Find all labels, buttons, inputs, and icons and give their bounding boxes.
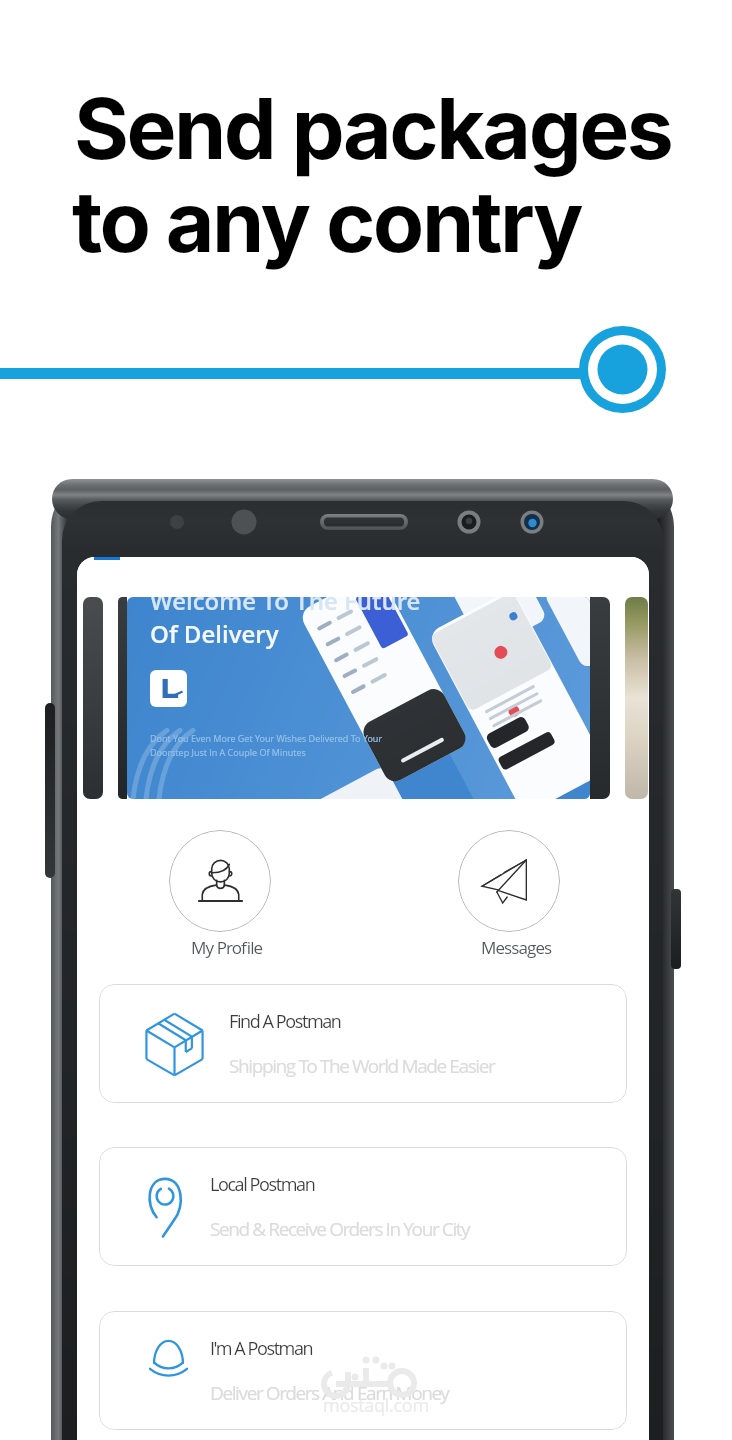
button[interactable]: I'm A Postman: [99, 1311, 627, 1430]
staticText: Of Delivery: [150, 617, 279, 650]
button[interactable]: Welcome To The Future: [127, 597, 590, 799]
staticText: Messages: [481, 936, 552, 959]
button[interactable]: Local Postman: [99, 1147, 627, 1266]
button[interactable]: Menu: [85, 557, 129, 573]
staticText: Send packages: [74, 78, 672, 180]
staticText: My Profile: [191, 936, 263, 959]
button[interactable]: Messages: [458, 830, 560, 959]
staticText: Find A Postman: [229, 1009, 341, 1034]
staticText: Welcome To The Future: [150, 597, 421, 617]
staticText: Shipping To The World Made Easier: [229, 1053, 495, 1079]
button[interactable]: My Profile: [169, 830, 271, 959]
staticText: Send & Receive Orders In Your City: [210, 1216, 470, 1242]
staticText: I'm A Postman: [210, 1336, 313, 1361]
staticText: Deliver Orders And Earn Money: [210, 1380, 449, 1406]
staticText: mostaql.com: [323, 1393, 429, 1418]
button[interactable]: Find A Postman: [99, 984, 627, 1103]
staticText: Dont You Even More Get Your Wishes Deliv…: [150, 732, 383, 759]
staticText: Local Postman: [210, 1172, 315, 1197]
staticText: to any contry: [72, 171, 582, 273]
